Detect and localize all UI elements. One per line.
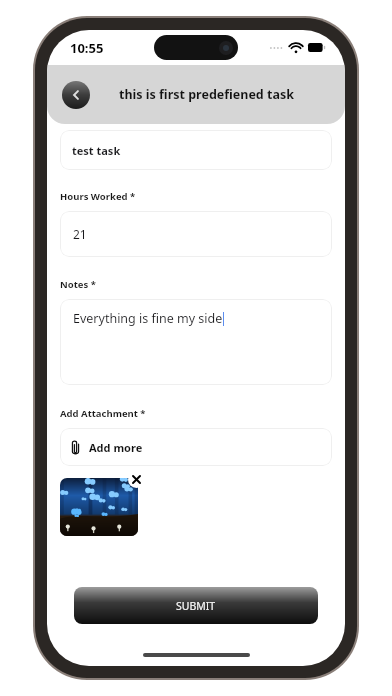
staticText: Add Attachment * [60, 407, 146, 420]
staticText: 21 [73, 226, 87, 242]
staticText: Everything is fine my side [73, 310, 223, 327]
button[interactable]: test task [60, 130, 332, 170]
staticText: 10:55 [70, 39, 104, 57]
button[interactable]: Everything is fine my side [60, 299, 332, 385]
button[interactable]: Back [62, 81, 90, 109]
staticText: SUBMIT [176, 599, 216, 613]
staticText: Add more [89, 440, 143, 455]
button[interactable]: Add more [60, 428, 332, 466]
button[interactable]: SUBMIT [74, 587, 318, 624]
staticText: Hours Worked * [60, 190, 136, 203]
button[interactable]: 21 [60, 211, 332, 257]
staticText: test task [72, 143, 121, 158]
button[interactable]: Remove attachment [128, 471, 145, 488]
staticText: Notes * [60, 278, 96, 291]
staticText: this is first predefiened task [119, 86, 294, 103]
